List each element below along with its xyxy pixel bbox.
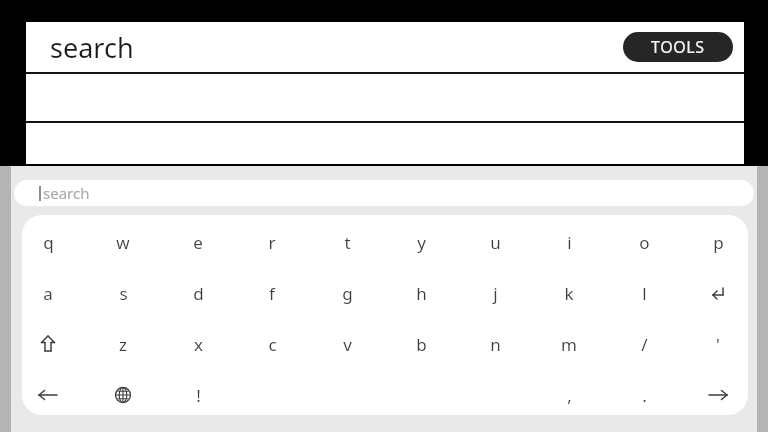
button[interactable]: g	[327, 273, 367, 313]
button[interactable]: y	[401, 222, 441, 262]
staticText: r	[268, 231, 276, 254]
staticText: u	[490, 231, 501, 254]
staticText: n	[490, 333, 501, 356]
button[interactable]: .	[624, 375, 664, 415]
button[interactable]: w	[103, 222, 143, 262]
staticText: '	[716, 333, 720, 356]
button[interactable]: ,	[549, 375, 589, 415]
button[interactable]: n	[475, 324, 515, 364]
staticText: w	[116, 231, 130, 254]
button[interactable]: b	[401, 324, 441, 364]
staticText: p	[713, 231, 724, 254]
button[interactable]: /	[624, 324, 664, 364]
button[interactable]: '	[698, 324, 738, 364]
button[interactable]: u	[475, 222, 515, 262]
button[interactable]: x	[178, 324, 218, 364]
staticText: /	[641, 333, 648, 356]
button[interactable]: v	[327, 324, 367, 364]
staticText: l	[642, 282, 647, 305]
button[interactable]: f	[252, 273, 292, 313]
button[interactable]: Change language	[103, 375, 143, 415]
staticText: search	[43, 183, 90, 203]
staticText: j	[493, 282, 498, 305]
staticText: search	[50, 29, 134, 66]
button[interactable]: e	[178, 222, 218, 262]
staticText: c	[268, 333, 277, 356]
button[interactable]: t	[327, 222, 367, 262]
staticText: o	[639, 231, 650, 254]
staticText: TOOLS	[651, 36, 705, 58]
staticText: .	[642, 384, 647, 407]
staticText: z	[119, 333, 127, 356]
button[interactable]: r	[252, 222, 292, 262]
staticText: m	[561, 333, 577, 356]
staticText: g	[342, 282, 353, 305]
staticText: d	[193, 282, 204, 305]
button[interactable]: c	[252, 324, 292, 364]
button[interactable]: Shift	[28, 324, 68, 364]
staticText: !	[196, 384, 201, 407]
button[interactable]: p	[698, 222, 738, 262]
staticText: b	[416, 333, 427, 356]
staticText: h	[416, 282, 427, 305]
staticText: f	[269, 282, 275, 305]
button[interactable]: search	[14, 180, 754, 206]
button[interactable]: m	[549, 324, 589, 364]
staticText: s	[119, 282, 128, 305]
staticText: x	[194, 333, 203, 356]
button[interactable]: s	[103, 273, 143, 313]
button[interactable]: j	[475, 273, 515, 313]
staticText: e	[193, 231, 203, 254]
button[interactable]: h	[401, 273, 441, 313]
button[interactable]: z	[103, 324, 143, 364]
staticText: k	[564, 282, 574, 305]
button[interactable]: o	[624, 222, 664, 262]
button[interactable]: i	[549, 222, 589, 262]
staticText: i	[567, 231, 572, 254]
staticText: t	[344, 231, 351, 254]
button[interactable]: TOOLS	[623, 32, 733, 62]
button[interactable]: Move cursor right	[698, 375, 738, 415]
staticText: y	[417, 231, 426, 254]
staticText: a	[43, 282, 53, 305]
button[interactable]: !	[178, 375, 218, 415]
button[interactable]: Move cursor left	[28, 375, 68, 415]
button[interactable]: k	[549, 273, 589, 313]
button[interactable]: l	[624, 273, 664, 313]
button[interactable]: q	[28, 222, 68, 262]
button[interactable]: d	[178, 273, 218, 313]
button[interactable]: a	[28, 273, 68, 313]
staticText: v	[343, 333, 352, 356]
button[interactable]: Enter	[698, 273, 738, 313]
staticText: q	[43, 231, 54, 254]
staticText: ,	[567, 384, 572, 407]
